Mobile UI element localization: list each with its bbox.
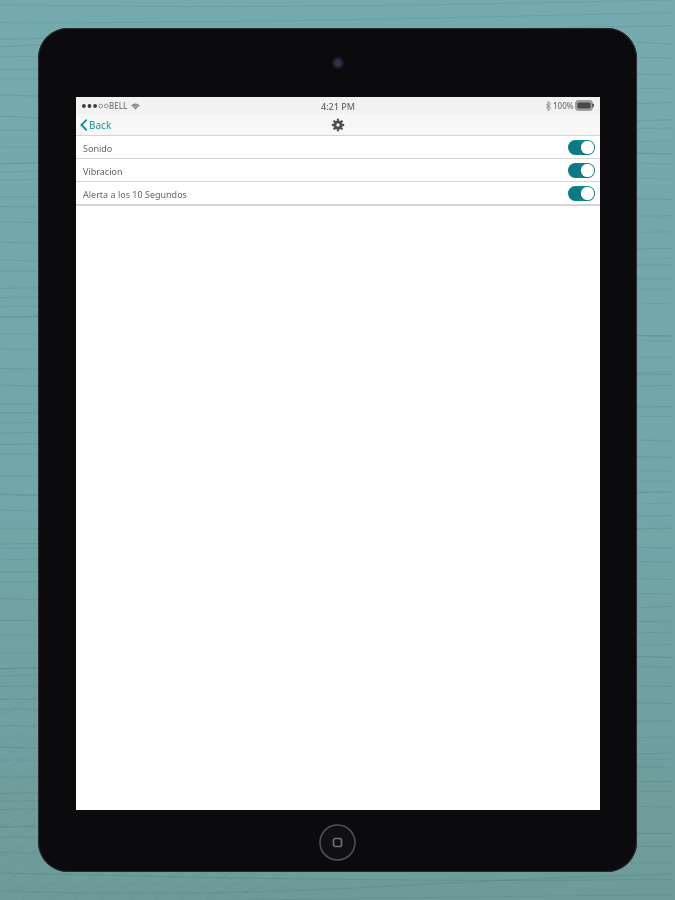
staticText: 4:21 PM: [321, 100, 355, 112]
button[interactable]: Toggle on: [568, 186, 595, 201]
button[interactable]: Back: [80, 118, 112, 132]
staticText: Vibracion: [83, 165, 123, 177]
staticText: BELL: [109, 100, 128, 111]
button[interactable]: Alerta a los 10 Segundos: [76, 182, 600, 205]
staticText: 100%: [553, 100, 574, 111]
button[interactable]: Home: [319, 824, 356, 861]
staticText: Alerta a los 10 Segundos: [83, 188, 187, 200]
staticText: Sonido: [83, 142, 113, 154]
button[interactable]: Toggle on: [568, 163, 595, 178]
staticText: Back: [89, 118, 112, 132]
button[interactable]: Sonido: [76, 136, 600, 159]
button[interactable]: Vibracion: [76, 159, 600, 182]
button[interactable]: Settings: [331, 118, 345, 132]
button[interactable]: Toggle on: [568, 140, 595, 155]
